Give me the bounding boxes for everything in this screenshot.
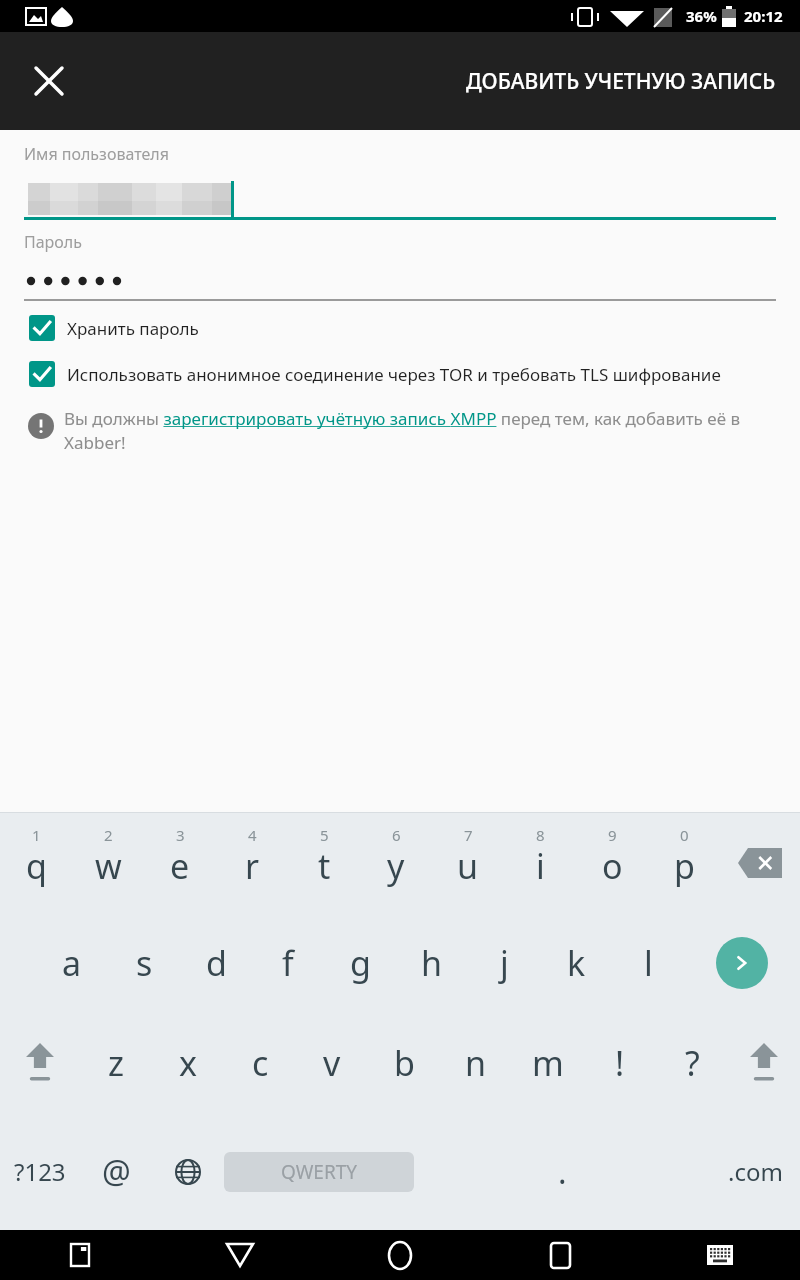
button[interactable]: g <box>324 913 396 1013</box>
button[interactable]: l <box>612 913 684 1013</box>
button[interactable]: x <box>152 1013 224 1113</box>
button[interactable]: Home <box>320 1230 480 1280</box>
button[interactable]: .com <box>710 1113 800 1230</box>
button[interactable]: a <box>36 913 108 1013</box>
button[interactable]: QWERTY <box>224 1152 414 1192</box>
staticText: ДОБАВИТЬ УЧЕТНУЮ ЗАПИСЬ <box>466 67 776 96</box>
staticText: l <box>644 940 653 986</box>
staticText: 3 <box>176 825 185 845</box>
button[interactable]: h <box>396 913 468 1013</box>
button[interactable]: 8 <box>504 813 576 913</box>
button[interactable]: 9 <box>576 813 648 913</box>
button[interactable]: v <box>296 1013 368 1113</box>
staticText: 4 <box>248 825 257 845</box>
button[interactable]: Change language <box>152 1113 224 1230</box>
staticText: Хранить пароль <box>67 317 199 340</box>
staticText: y <box>387 843 405 889</box>
staticText: t <box>318 843 331 889</box>
staticText: . <box>558 1150 567 1194</box>
button[interactable]: b <box>368 1013 440 1113</box>
staticText: c <box>252 1040 269 1086</box>
staticText: v <box>323 1040 341 1086</box>
button[interactable]: Shift <box>728 1013 800 1113</box>
staticText: 1 <box>32 825 41 845</box>
button[interactable]: Window <box>0 1230 160 1280</box>
button[interactable]: ! <box>584 1013 656 1113</box>
staticText: f <box>282 940 294 986</box>
staticText: Использовать анонимное соединение через … <box>67 363 721 386</box>
button[interactable]: 0 <box>648 813 720 913</box>
staticText: ! <box>615 1040 625 1086</box>
button[interactable]: Backspace <box>720 813 800 913</box>
staticText: m <box>532 1040 564 1086</box>
staticText: 2 <box>104 825 113 845</box>
button[interactable]: 1 <box>0 813 72 913</box>
staticText: 5 <box>320 825 329 845</box>
button[interactable]: ?123 <box>0 1113 80 1230</box>
button[interactable]: . <box>414 1113 710 1230</box>
staticText: x <box>179 1040 197 1086</box>
button[interactable]: Хранить пароль <box>0 311 800 345</box>
staticText: w <box>95 843 122 889</box>
staticText: 8 <box>536 825 545 845</box>
button[interactable]: ? <box>656 1013 728 1113</box>
staticText: .com <box>728 1155 783 1188</box>
button[interactable]: Использовать анонимное соединение через … <box>0 357 800 391</box>
button[interactable]: k <box>540 913 612 1013</box>
staticText: 6 <box>392 825 401 845</box>
staticText: Вы должны зарегистрировать учётную запис… <box>64 407 760 454</box>
button[interactable]: Back <box>160 1230 320 1280</box>
staticText: u <box>457 843 479 889</box>
staticText: ?123 <box>14 1155 66 1188</box>
staticText: 0 <box>680 825 689 845</box>
button[interactable]: 3 <box>144 813 216 913</box>
staticText: k <box>567 940 586 986</box>
button[interactable]: 6 <box>360 813 432 913</box>
staticText: 7 <box>464 825 473 845</box>
button[interactable]: Recents <box>480 1230 640 1280</box>
staticText: z <box>108 1040 124 1086</box>
staticText: 20:12 <box>744 6 783 26</box>
staticText: 36% <box>686 6 717 26</box>
button[interactable]: s <box>108 913 180 1013</box>
staticText: ? <box>685 1040 700 1086</box>
button[interactable]: n <box>440 1013 512 1113</box>
staticText: h <box>421 940 443 986</box>
staticText: e <box>170 843 190 889</box>
button[interactable]: 4 <box>216 813 288 913</box>
button[interactable]: @ <box>80 1113 152 1230</box>
button[interactable]: d <box>180 913 252 1013</box>
button[interactable]: f <box>252 913 324 1013</box>
button[interactable]: Close <box>22 54 76 108</box>
staticText: i <box>536 843 545 889</box>
staticText: b <box>394 1040 415 1086</box>
button[interactable]: c <box>224 1013 296 1113</box>
staticText: r <box>245 843 260 889</box>
staticText: Пароль <box>24 231 82 253</box>
button[interactable]: Keyboard <box>640 1230 800 1280</box>
staticText: 9 <box>608 825 617 845</box>
button[interactable]: 2 <box>72 813 144 913</box>
staticText: s <box>136 940 153 986</box>
button[interactable]: j <box>468 913 540 1013</box>
button[interactable]: m <box>512 1013 584 1113</box>
staticText: @ <box>102 1150 131 1194</box>
button[interactable]: 7 <box>432 813 504 913</box>
staticText: a <box>62 940 82 986</box>
staticText: g <box>350 940 371 986</box>
staticText: n <box>465 1040 487 1086</box>
staticText: QWERTY <box>281 1159 358 1185</box>
staticText: q <box>26 843 47 889</box>
staticText: p <box>674 843 695 889</box>
button[interactable]: Enter <box>684 913 800 1013</box>
button[interactable]: 5 <box>288 813 360 913</box>
staticText: o <box>602 843 623 889</box>
button[interactable]: Shift <box>0 1013 80 1113</box>
staticText: Имя пользователя <box>24 143 169 165</box>
button[interactable]: z <box>80 1013 152 1113</box>
staticText: d <box>206 940 227 986</box>
staticText: j <box>500 940 509 986</box>
